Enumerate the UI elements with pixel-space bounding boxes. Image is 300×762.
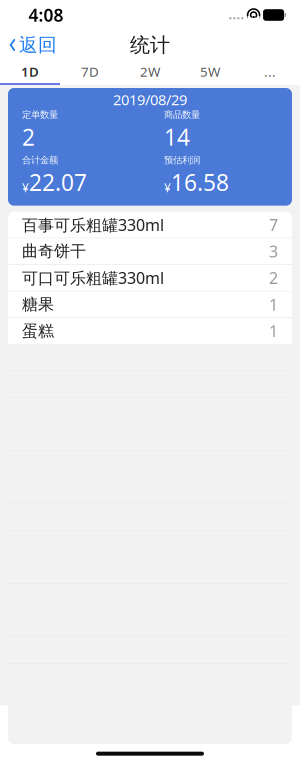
staticText: 7 <box>269 214 278 235</box>
staticText: 糖果 <box>22 295 54 314</box>
staticText: ¥ <box>164 180 171 196</box>
button[interactable]: 蛋糕 <box>8 318 292 345</box>
button[interactable]: 曲奇饼干 <box>8 238 292 265</box>
staticText: 预估利润 <box>164 154 200 166</box>
staticText: 百事可乐粗罐330ml <box>22 214 164 235</box>
staticText: 16.58 <box>171 167 229 198</box>
staticText: 22.07 <box>29 167 87 198</box>
staticText: 可口可乐粗罐330ml <box>22 267 164 288</box>
button[interactable]: 可口可乐粗罐330ml <box>8 265 292 291</box>
staticText: 商品数量 <box>164 109 200 120</box>
button[interactable]: 百事可乐粗罐330ml <box>8 212 292 238</box>
staticText: ... <box>264 63 276 80</box>
staticText: 1D <box>21 63 39 80</box>
staticText: 7D <box>81 63 99 80</box>
staticText: 2W <box>140 63 160 80</box>
staticText: 5W <box>200 63 220 80</box>
staticText: 合计金额 <box>22 154 58 166</box>
button[interactable]: ... <box>240 60 300 83</box>
staticText: 2 <box>269 267 278 288</box>
staticText: 统计 <box>130 33 170 57</box>
staticText: 蛋糕 <box>22 321 54 341</box>
staticText: 14 <box>164 121 190 152</box>
staticText: ¥ <box>22 180 29 196</box>
button[interactable]: 2W <box>120 60 180 83</box>
staticText: 曲奇饼干 <box>22 241 86 261</box>
button[interactable]: 7D <box>60 60 120 83</box>
button[interactable]: 5W <box>180 60 240 83</box>
button[interactable]: 返回 <box>0 30 67 60</box>
staticText: 1 <box>269 320 278 342</box>
staticText: 2019/08/29 <box>113 90 187 109</box>
staticText: 返回 <box>19 33 57 56</box>
staticText: 1 <box>269 294 278 315</box>
button[interactable]: 1D <box>0 60 60 83</box>
staticText: 3 <box>269 241 278 262</box>
button[interactable]: 糖果 <box>8 291 292 318</box>
staticText: 定单数量 <box>22 109 58 120</box>
staticText: 2 <box>22 121 35 152</box>
